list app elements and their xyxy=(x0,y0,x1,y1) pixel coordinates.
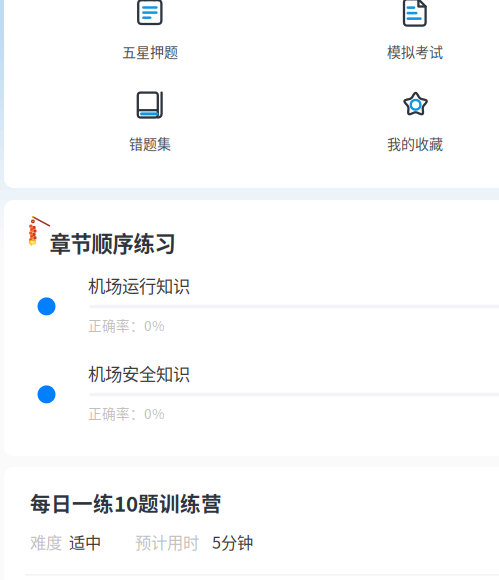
button[interactable]: 我的收藏 xyxy=(355,90,475,164)
staticText: 正确率：0% xyxy=(88,315,165,335)
staticText: 我的收藏 xyxy=(387,133,443,153)
staticText: 错题集 xyxy=(129,133,171,153)
staticText: 模拟考试 xyxy=(387,41,443,61)
staticText: 正确率：0% xyxy=(88,403,165,423)
staticText: 机场运行知识 xyxy=(88,273,190,298)
button[interactable]: 模拟考试 xyxy=(355,0,475,72)
staticText: 5分钟 xyxy=(212,530,253,554)
button[interactable]: 机场运行知识 xyxy=(4,277,499,364)
staticText: 五星押题 xyxy=(122,41,178,61)
staticText: 难度 xyxy=(30,530,62,554)
staticText: 预计用时 xyxy=(135,530,199,554)
staticText: 章节顺序练习 xyxy=(49,227,175,258)
staticText: 机场安全知识 xyxy=(88,361,190,386)
button[interactable]: 机场安全知识 xyxy=(4,365,499,452)
staticText: 适中 xyxy=(69,530,101,554)
staticText: 每日一练10题训练营 xyxy=(30,488,222,518)
button[interactable]: 五星押题 xyxy=(90,0,210,72)
button[interactable]: 错题集 xyxy=(90,90,210,164)
